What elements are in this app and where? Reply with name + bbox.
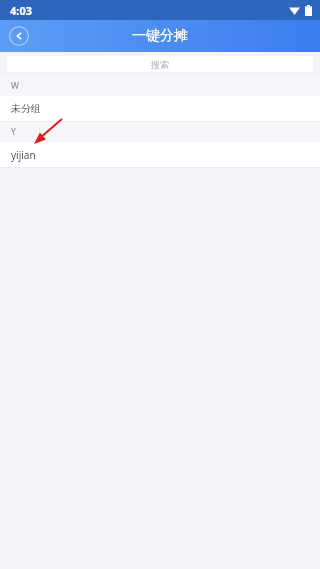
staticText: 未分组 [11,102,41,115]
staticText: 一键分摊 [132,27,188,45]
button[interactable]: yijian [0,142,320,167]
staticText: Y [11,126,16,138]
button[interactable]: 未分组 [0,96,320,121]
staticText: 搜索 [151,59,169,70]
button[interactable]: Back [9,26,29,46]
button[interactable]: 搜索 [7,56,313,72]
staticText: 4:03 [10,3,32,18]
staticText: W [11,80,19,92]
staticText: yijian [11,148,36,162]
